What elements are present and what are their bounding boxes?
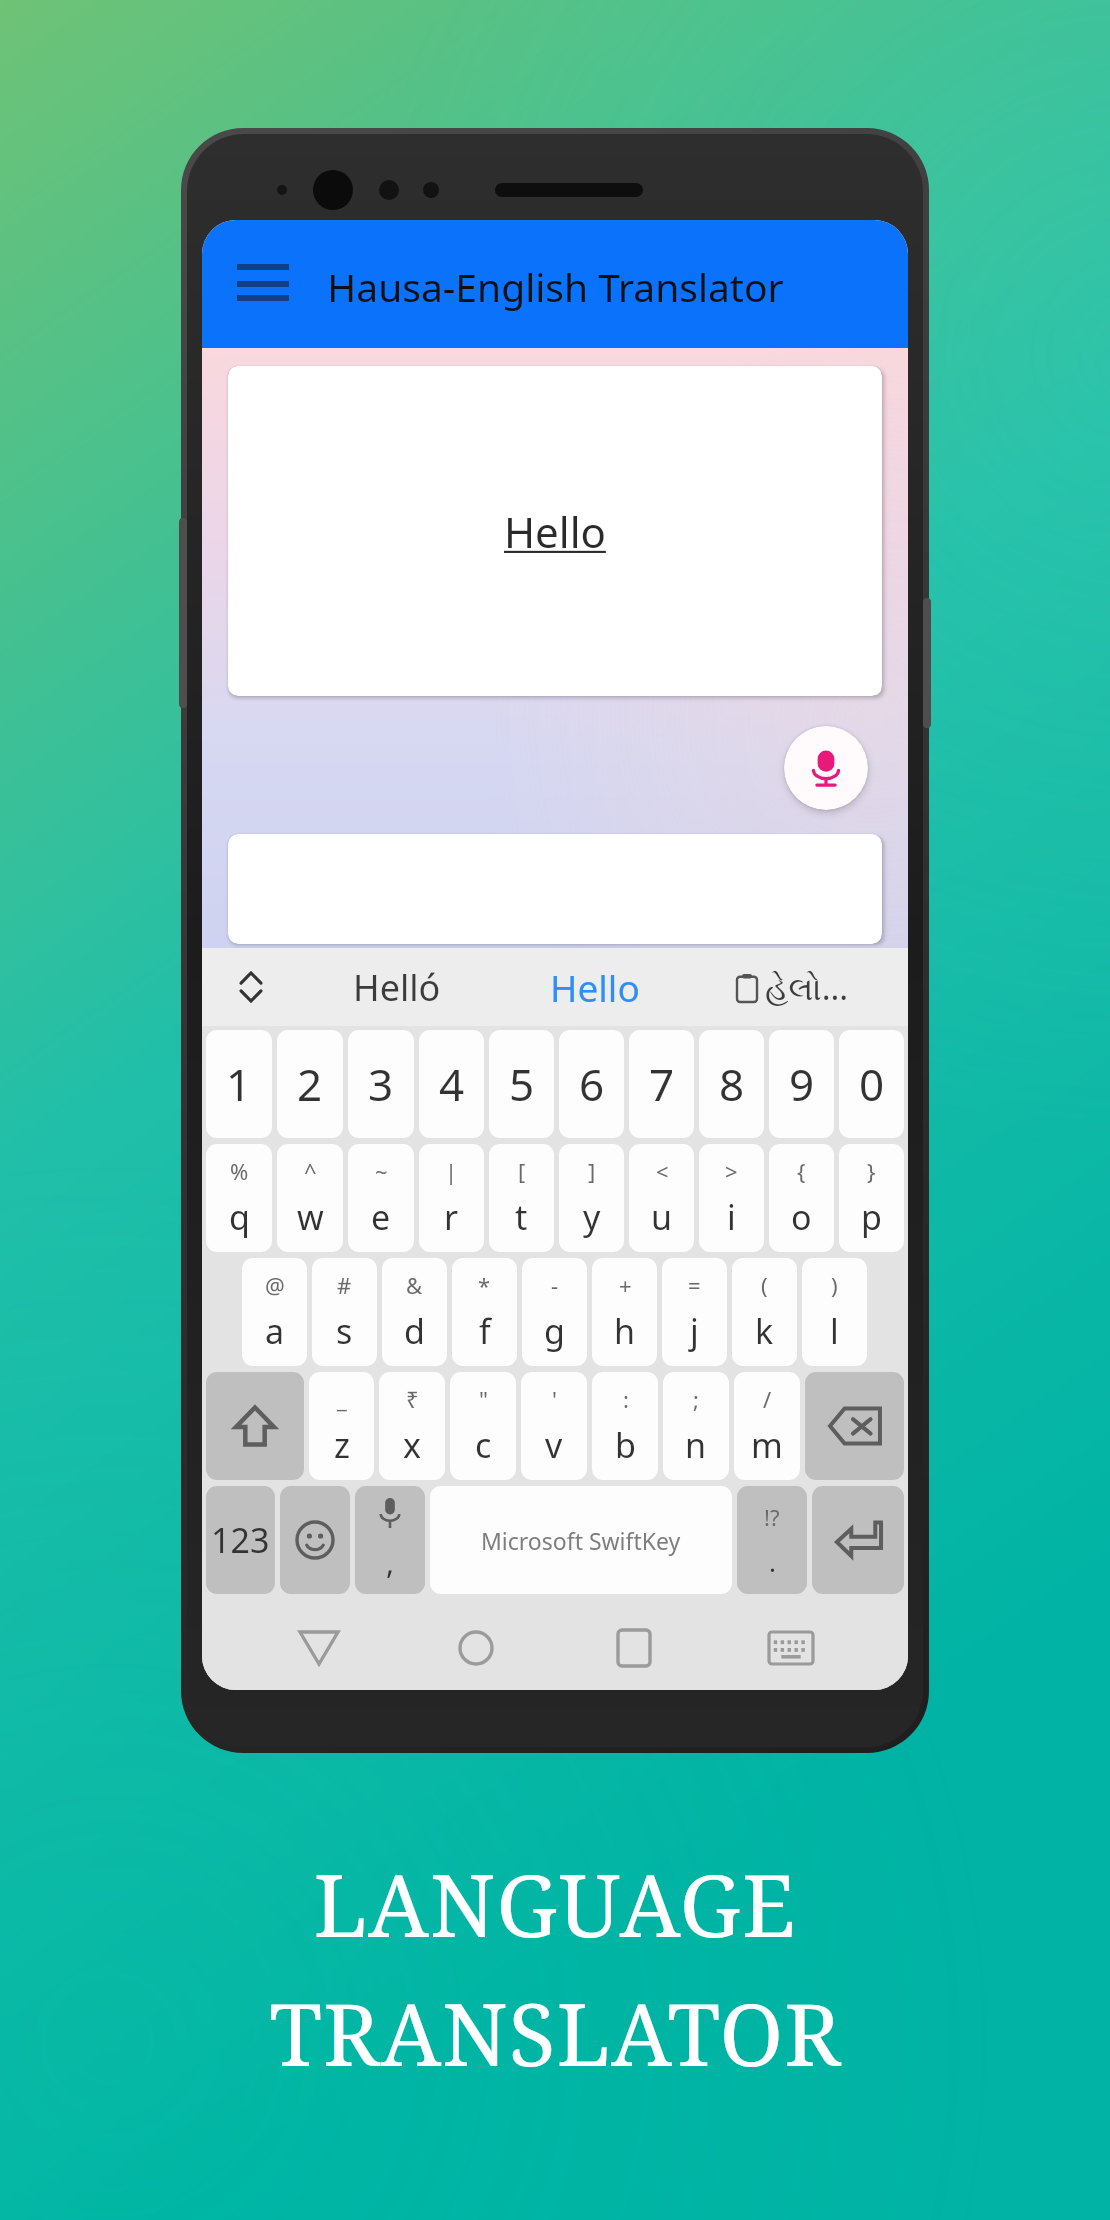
staticText: h	[614, 1308, 636, 1354]
button[interactable]: &	[382, 1258, 447, 1366]
button[interactable]: Expand suggestions	[224, 960, 278, 1014]
staticText: Hausa-English Translator	[327, 260, 784, 313]
button[interactable]: Back	[279, 1608, 359, 1688]
button[interactable]: |	[419, 1144, 484, 1252]
staticText: ^	[304, 1156, 317, 1186]
staticText: q	[229, 1194, 250, 1240]
button[interactable]: @	[242, 1258, 307, 1366]
button[interactable]: Helló	[298, 948, 496, 1026]
staticText: k	[755, 1308, 774, 1354]
button[interactable]: હેલો...	[694, 948, 892, 1026]
staticText: #	[337, 1270, 352, 1300]
staticText: f	[479, 1308, 491, 1354]
button[interactable]: ;	[663, 1372, 729, 1480]
staticText: +	[619, 1270, 632, 1300]
staticText: v	[545, 1422, 563, 1468]
staticText: 0	[859, 1054, 885, 1114]
button[interactable]: Hello	[228, 366, 882, 696]
staticText: 1	[226, 1054, 252, 1114]
button[interactable]: ~	[348, 1144, 414, 1252]
staticText: 4	[439, 1054, 465, 1114]
button[interactable]: >	[699, 1144, 764, 1252]
button[interactable]: ^	[277, 1144, 343, 1252]
button[interactable]: Space	[430, 1486, 732, 1594]
staticText: g	[544, 1308, 565, 1354]
staticText: @	[265, 1270, 285, 1300]
button[interactable]: }	[839, 1144, 904, 1252]
button[interactable]: 9	[769, 1030, 834, 1138]
button[interactable]: +	[592, 1258, 657, 1366]
button[interactable]: Home	[436, 1608, 516, 1688]
button[interactable]: Shift	[206, 1372, 304, 1480]
staticText: ,	[386, 1542, 395, 1583]
staticText: %	[230, 1156, 249, 1186]
button[interactable]: ]	[559, 1144, 624, 1252]
button[interactable]: Speak, voice input	[784, 726, 868, 810]
button[interactable]: "	[450, 1372, 516, 1480]
staticText: b	[615, 1422, 636, 1468]
staticText: ]	[588, 1156, 596, 1186]
button[interactable]: Backspace	[805, 1372, 904, 1480]
button[interactable]: 7	[629, 1030, 694, 1138]
staticText: Hello	[504, 503, 606, 560]
staticText: 123	[211, 1517, 270, 1563]
button[interactable]: (	[732, 1258, 797, 1366]
button[interactable]: =	[662, 1258, 727, 1366]
staticText: 8	[719, 1054, 745, 1114]
staticText: '	[552, 1384, 557, 1414]
staticText: 2	[297, 1054, 323, 1114]
button[interactable]: '	[521, 1372, 587, 1480]
button[interactable]: Punctuation	[737, 1486, 807, 1594]
button[interactable]: /	[734, 1372, 800, 1480]
staticText: a	[265, 1308, 285, 1354]
button[interactable]: Enter	[812, 1486, 904, 1594]
button[interactable]: )	[802, 1258, 867, 1366]
button[interactable]: [	[489, 1144, 554, 1252]
button[interactable]: 2	[277, 1030, 343, 1138]
staticText: w	[297, 1194, 324, 1240]
button[interactable]: 5	[489, 1030, 554, 1138]
staticText: t	[515, 1194, 528, 1240]
button[interactable]: #	[312, 1258, 377, 1366]
button[interactable]: Numbers and symbols	[206, 1486, 275, 1594]
staticText: ₹	[406, 1384, 419, 1414]
button[interactable]: Recent apps	[594, 1608, 674, 1688]
button[interactable]: {	[769, 1144, 834, 1252]
button[interactable]: 1	[206, 1030, 272, 1138]
button[interactable]: <	[629, 1144, 694, 1252]
button[interactable]: 6	[559, 1030, 624, 1138]
button[interactable]: 0	[839, 1030, 904, 1138]
button[interactable]: -	[522, 1258, 587, 1366]
button[interactable]: 3	[348, 1030, 414, 1138]
staticText: c	[475, 1422, 492, 1468]
staticText: {	[797, 1156, 806, 1186]
staticText: <	[656, 1156, 669, 1186]
staticText: :	[623, 1384, 629, 1414]
button[interactable]: Voice input	[355, 1486, 425, 1594]
staticText: 6	[579, 1054, 605, 1114]
button[interactable]: %	[206, 1144, 272, 1252]
staticText: |	[445, 1156, 458, 1186]
staticText: n	[685, 1422, 707, 1468]
staticText: j	[690, 1308, 699, 1354]
button[interactable]: 8	[699, 1030, 764, 1138]
staticText: u	[651, 1194, 673, 1240]
button[interactable]: *	[452, 1258, 517, 1366]
button[interactable]: 4	[419, 1030, 484, 1138]
button[interactable]: _	[309, 1372, 374, 1480]
button[interactable]: Hello	[496, 948, 694, 1026]
button[interactable]: ₹	[379, 1372, 445, 1480]
staticText: }	[867, 1156, 876, 1186]
staticText: "	[479, 1384, 488, 1414]
button[interactable]: Hide keyboard	[751, 1608, 831, 1688]
staticText: Microsoft SwiftKey	[481, 1525, 681, 1556]
button[interactable]: Open navigation menu	[230, 251, 296, 317]
button[interactable]: :	[592, 1372, 658, 1480]
staticText: TRANSLATOR	[269, 1974, 842, 2091]
staticText: .	[769, 1544, 776, 1579]
button[interactable]: Emoji	[280, 1486, 350, 1594]
staticText: x	[403, 1422, 421, 1468]
staticText: o	[791, 1194, 812, 1240]
staticText: !?	[764, 1502, 780, 1532]
